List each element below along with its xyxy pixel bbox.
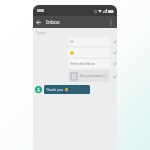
staticText: Today [36,30,46,35]
button[interactable]: Hi [68,37,110,46]
button[interactable]: More options [105,17,116,28]
staticText: Here's the file as discussed [70,62,108,66]
button[interactable]: Here's the file as discussed [68,59,110,68]
button[interactable] [68,48,110,57]
staticText: Documentation_2.pdf [80,74,108,78]
staticText: Inbox [46,19,60,26]
button[interactable]: Documentation_2.pdf [68,70,110,82]
staticText: Thank you [46,87,64,92]
staticText: Hi [70,39,74,44]
button[interactable]: Thank you [44,85,90,94]
button[interactable]: Back [33,17,44,28]
